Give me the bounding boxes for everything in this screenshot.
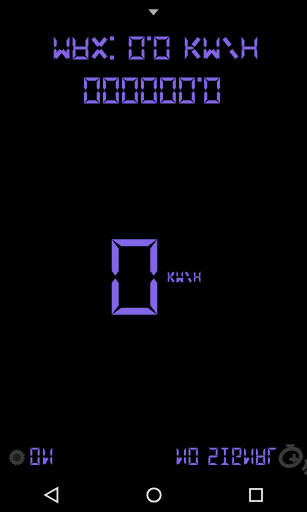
button[interactable]: Settings — [4, 442, 66, 472]
button[interactable]: Maximum speed — [20, 30, 307, 66]
button[interactable]: Back — [0, 478, 103, 512]
button[interactable]: Current speed — [0, 200, 307, 320]
button[interactable]: Home — [103, 478, 205, 512]
button[interactable]: GPS status — [165, 442, 303, 472]
button[interactable]: Trip distance — [20, 72, 307, 108]
button[interactable]: Recent apps — [205, 478, 307, 512]
